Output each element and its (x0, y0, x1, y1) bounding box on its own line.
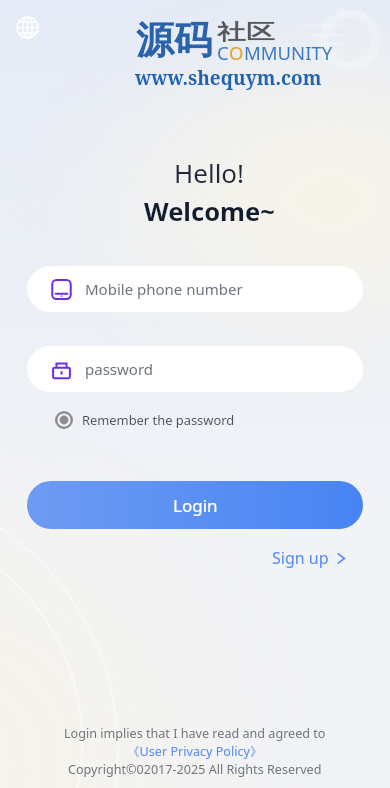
staticText: O (229, 40, 244, 65)
staticText: C (217, 40, 229, 65)
staticText: www.shequym.com (135, 65, 322, 91)
staticText: Hello! (174, 155, 245, 190)
staticText: Sign up (272, 547, 329, 569)
button[interactable]: Sign up (272, 547, 348, 569)
button[interactable]: 《User Privacy Policy》 (127, 743, 263, 760)
staticText: Login (173, 494, 218, 517)
button[interactable]: Remember the password (55, 411, 235, 429)
staticText: password (85, 359, 153, 379)
button[interactable]: Login (27, 481, 363, 529)
staticText: Mobile phone number (85, 279, 243, 299)
button[interactable]: Mobile phone number (27, 266, 363, 312)
staticText: 源码 (136, 16, 212, 64)
staticText: Copyright©02017-2025 All Rights Reserved (68, 761, 322, 778)
staticText: Remember the password (82, 411, 235, 429)
staticText: Welcome~ (144, 194, 275, 229)
button[interactable]: password (27, 346, 363, 392)
staticText: Login implies that I have read and agree… (64, 725, 326, 742)
staticText: MMUNITY (244, 40, 333, 65)
staticText: 社区 (217, 19, 275, 45)
button[interactable]: Language (16, 16, 39, 39)
